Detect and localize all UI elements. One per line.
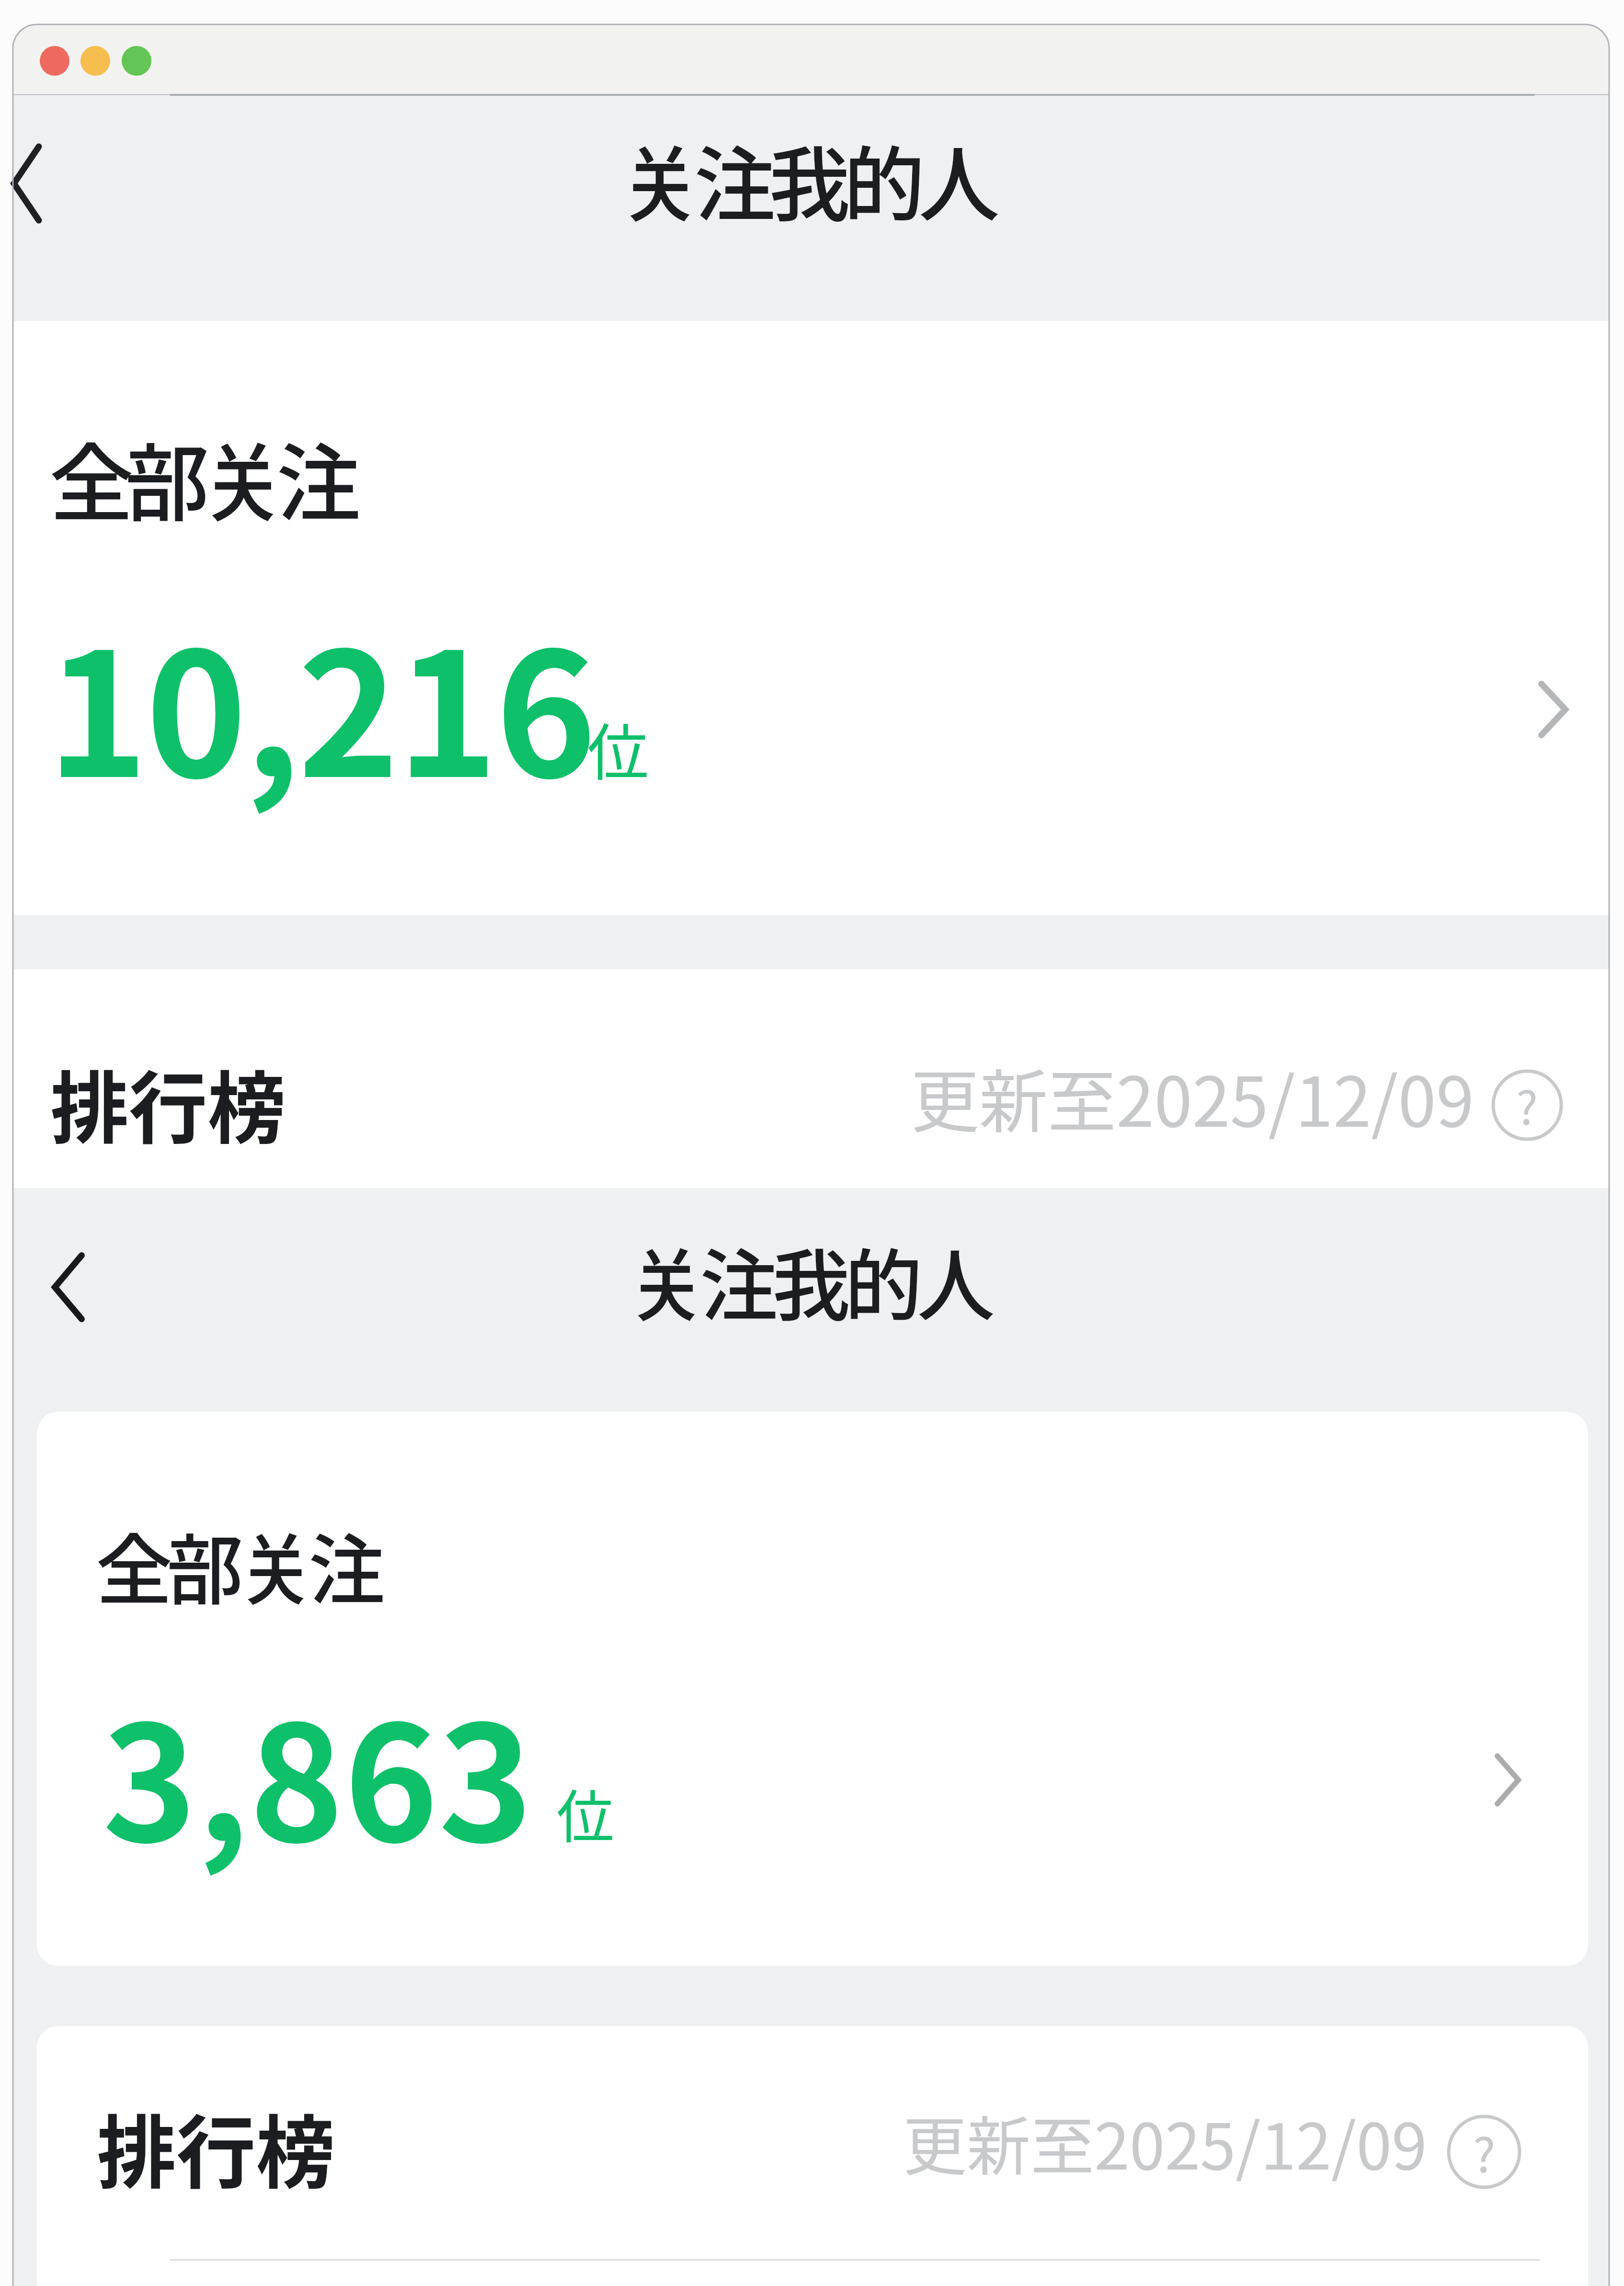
staticText: 排行榜 bbox=[50, 1046, 286, 1159]
staticText: 3,863 bbox=[103, 1657, 534, 1877]
button[interactable] bbox=[14, 969, 1609, 1188]
button[interactable] bbox=[12, 144, 46, 225]
staticText: 全部关注 bbox=[96, 1509, 380, 1620]
staticText: 全部关注 bbox=[49, 416, 353, 538]
staticText: 关注我的人 bbox=[628, 1223, 990, 1337]
staticText: 排行榜 bbox=[97, 2089, 335, 2204]
staticText: 10,216 bbox=[47, 578, 595, 826]
button[interactable] bbox=[37, 2026, 1588, 2286]
button[interactable]: ? bbox=[1443, 2111, 1525, 2193]
staticText: 关注我的人 bbox=[619, 120, 994, 238]
button[interactable] bbox=[37, 1412, 1588, 1966]
staticText: ? bbox=[1516, 1072, 1538, 1138]
staticText: 位 bbox=[587, 704, 649, 793]
staticText: 更新至2025/12/09 bbox=[911, 1047, 1475, 1146]
staticText: 更新至2025/12/09 bbox=[903, 2096, 1427, 2188]
button[interactable] bbox=[14, 321, 1609, 915]
button[interactable] bbox=[43, 1241, 96, 1332]
button[interactable]: ? bbox=[1487, 1064, 1568, 1146]
staticText: 位 bbox=[557, 1772, 614, 1855]
staticText: ? bbox=[1473, 2118, 1496, 2186]
